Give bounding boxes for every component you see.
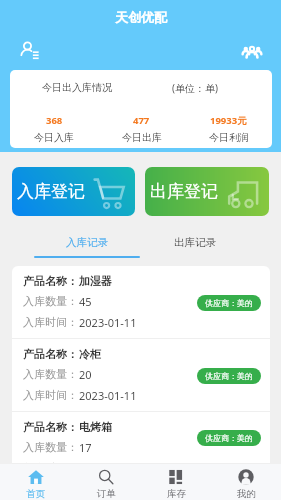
staticText: 我的 <box>237 488 256 500</box>
staticText: 今日利润 <box>209 131 249 144</box>
staticText: 冷柜 <box>79 347 101 361</box>
staticText: 入库登记 <box>17 181 85 202</box>
button[interactable]: 供应商：美的 <box>205 371 253 381</box>
staticText: 首页 <box>26 488 45 500</box>
staticText: 供应商：美的 <box>205 371 253 381</box>
button[interactable]: 产品名称： <box>12 339 270 412</box>
button[interactable]: 订单 <box>71 464 141 500</box>
staticText: 供应商：美的 <box>205 298 253 308</box>
button[interactable]: 我的 <box>211 464 281 500</box>
button[interactable]: 产品名称： <box>12 266 270 339</box>
button[interactable]: 出库记录 <box>142 232 248 258</box>
staticText: 出库登记 <box>150 181 218 202</box>
staticText: 今日出入库情况 <box>42 81 112 94</box>
staticText: 供应商：美的 <box>205 433 253 443</box>
staticText: 入库时间： <box>23 388 78 402</box>
staticText: 加湿器 <box>79 274 112 288</box>
button[interactable]: 出库登记 <box>145 167 269 216</box>
button[interactable]: 库存 <box>141 464 211 500</box>
staticText: 17 <box>79 440 92 455</box>
staticText: 入库记录 <box>66 236 108 249</box>
staticText: 477 <box>133 114 150 127</box>
staticText: 入库时间： <box>23 461 78 464</box>
button[interactable]: 供应商：美的 <box>205 433 253 443</box>
button[interactable]: 入库记录 <box>34 232 140 258</box>
staticText: 库存 <box>167 488 186 500</box>
staticText: 订单 <box>97 488 116 500</box>
staticText: 入库数量： <box>23 367 78 381</box>
staticText: 2023-01-11 <box>79 461 137 464</box>
staticText: 产品名称： <box>23 420 78 434</box>
staticText: (单位：单) <box>172 81 218 95</box>
staticText: 产品名称： <box>23 347 78 361</box>
button[interactable]: Contacts <box>21 41 39 59</box>
staticText: 19933元 <box>210 114 247 127</box>
staticText: 入库数量： <box>23 294 78 308</box>
staticText: 2023-01-11 <box>79 388 137 403</box>
staticText: 368 <box>46 114 63 127</box>
button[interactable]: 产品名称： <box>12 412 270 464</box>
staticText: 45 <box>79 294 92 309</box>
button[interactable]: 首页 <box>0 464 71 500</box>
staticText: 今日出库 <box>122 131 162 144</box>
staticText: 天创优配 <box>115 9 167 25</box>
staticText: 电烤箱 <box>79 420 112 434</box>
staticText: 入库时间： <box>23 315 78 329</box>
staticText: 今日入库 <box>34 131 74 144</box>
button[interactable]: 入库登记 <box>12 167 135 216</box>
staticText: 入库数量： <box>23 440 78 454</box>
button[interactable]: Team <box>243 43 261 61</box>
staticText: 出库记录 <box>174 236 216 249</box>
button[interactable]: 供应商：美的 <box>205 298 253 308</box>
staticText: 2023-01-11 <box>79 315 137 330</box>
staticText: 20 <box>79 367 92 382</box>
staticText: 产品名称： <box>23 274 78 288</box>
